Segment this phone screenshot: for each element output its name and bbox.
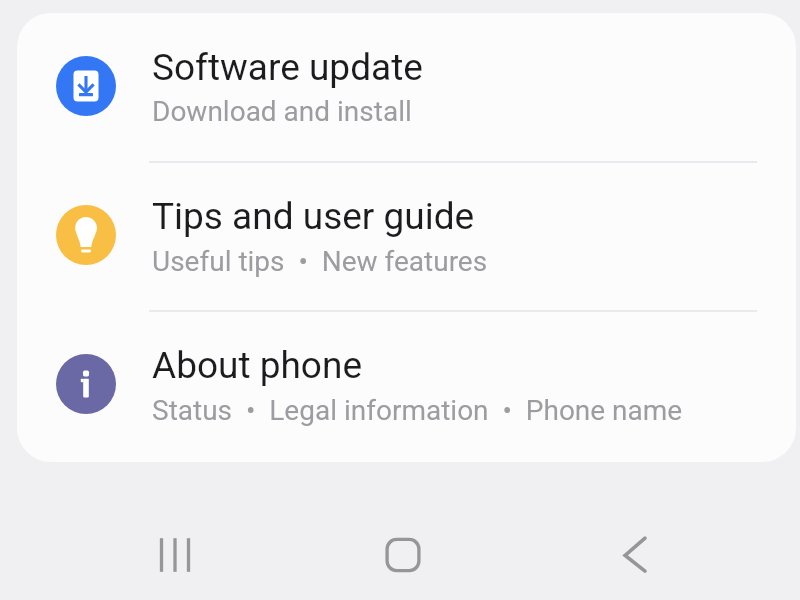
- staticText: About phone: [152, 344, 363, 387]
- button[interactable]: Recent apps: [125, 505, 225, 600]
- button[interactable]: [17, 161, 796, 310]
- staticText: Tips and user guide: [152, 195, 475, 238]
- button[interactable]: [17, 11, 796, 160]
- button[interactable]: [17, 310, 796, 459]
- staticText: Useful tips • New features: [152, 245, 488, 278]
- staticText: Download and install: [152, 95, 412, 128]
- staticText: Software update: [152, 46, 423, 89]
- button[interactable]: Back: [585, 505, 685, 600]
- button[interactable]: Home: [353, 505, 453, 600]
- staticText: Status • Legal information • Phone name: [152, 394, 683, 427]
